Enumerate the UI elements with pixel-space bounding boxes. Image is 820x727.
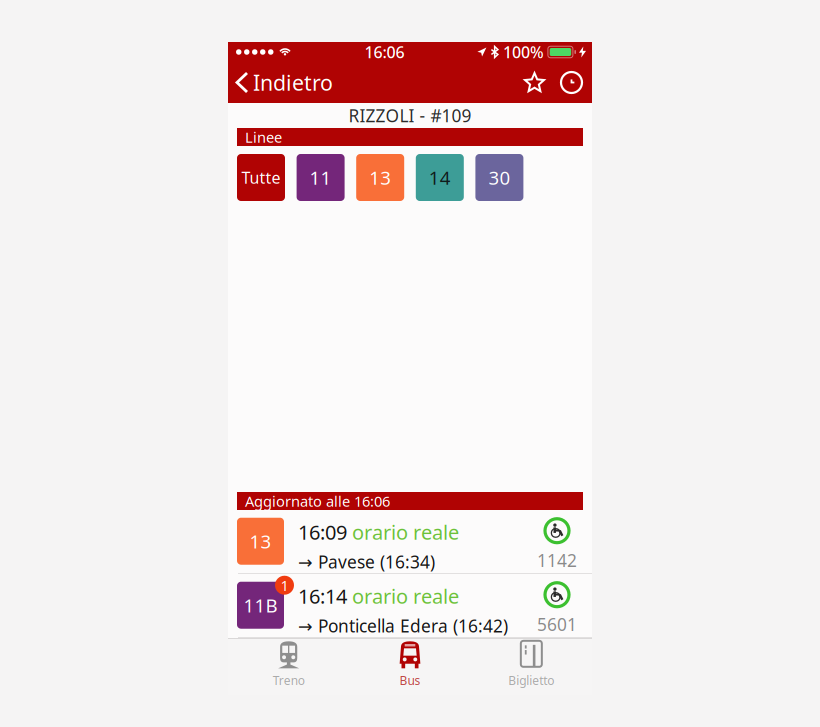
button[interactable]: Orari xyxy=(553,62,590,103)
staticText: → Pavese (16:34) xyxy=(298,550,435,573)
staticText: → Ponticella Edera (16:42) xyxy=(298,614,508,637)
staticText: RIZZOLI - #109 xyxy=(348,104,471,127)
staticText: 11 xyxy=(310,165,332,190)
staticText: 1142 xyxy=(537,549,577,572)
button[interactable]: Treno xyxy=(228,639,349,691)
staticText: 13 xyxy=(369,165,391,190)
staticText: 11B xyxy=(243,593,277,618)
button[interactable]: 13 xyxy=(356,154,404,201)
button[interactable]: 13 xyxy=(228,510,592,573)
button[interactable]: Indietro xyxy=(228,62,333,103)
staticText: Treno xyxy=(273,672,305,688)
button[interactable]: 30 xyxy=(475,154,523,201)
staticText: 5601 xyxy=(537,613,577,636)
button[interactable]: 11B xyxy=(228,574,592,637)
staticText: Bus xyxy=(399,672,420,688)
staticText: 30 xyxy=(488,165,510,190)
button[interactable]: 11 xyxy=(297,154,345,201)
staticText: orario reale xyxy=(352,583,459,609)
button[interactable]: Biglietto xyxy=(471,639,592,691)
button[interactable]: Tutte xyxy=(237,154,285,201)
button[interactable]: 14 xyxy=(416,154,464,201)
staticText: Linee xyxy=(245,127,282,147)
button[interactable]: Bus xyxy=(349,639,471,691)
staticText: 16:09 xyxy=(298,519,347,545)
staticText: 16:06 xyxy=(364,41,404,63)
staticText: Biglietto xyxy=(508,672,554,688)
button[interactable]: Preferiti xyxy=(516,62,553,103)
staticText: Indietro xyxy=(253,68,333,97)
staticText: Tutte xyxy=(241,167,280,188)
staticText: orario reale xyxy=(352,519,459,545)
staticText: 100% xyxy=(503,41,544,63)
staticText: 1 xyxy=(280,575,288,595)
staticText: Aggiornato alle 16:06 xyxy=(245,491,390,511)
staticText: 13 xyxy=(249,529,271,554)
staticText: 14 xyxy=(429,165,451,190)
staticText: 16:14 xyxy=(298,583,347,609)
